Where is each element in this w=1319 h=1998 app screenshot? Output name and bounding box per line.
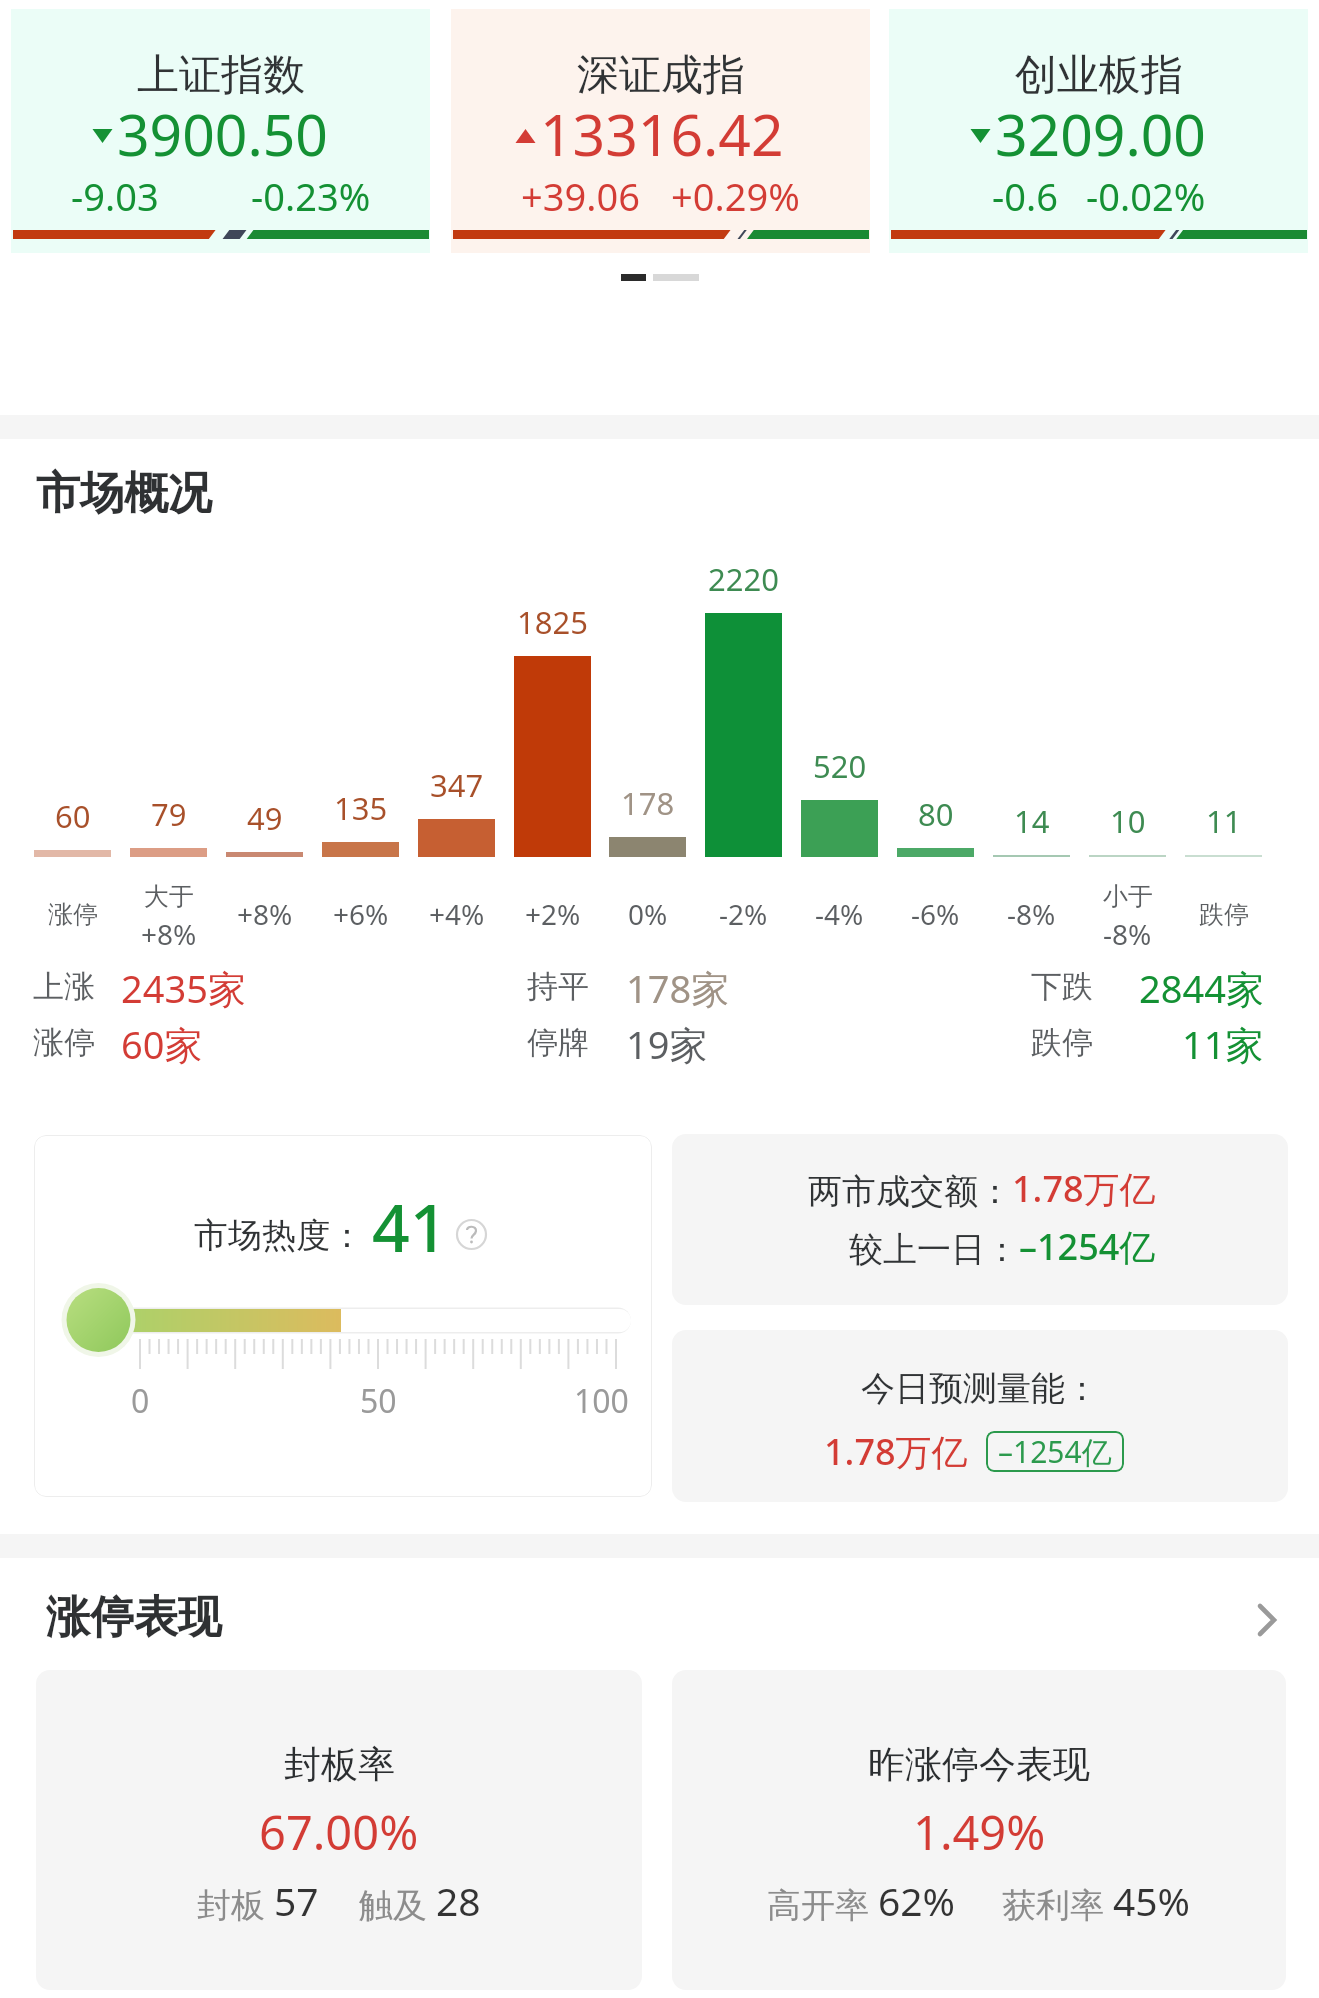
staticText: -8% bbox=[1103, 915, 1152, 953]
staticText: 市场热度： bbox=[194, 1214, 364, 1257]
staticText: 两市成交额： bbox=[808, 1170, 1012, 1213]
button[interactable]: 上证指数 bbox=[11, 9, 430, 253]
staticText: –1254亿 bbox=[1019, 1222, 1156, 1271]
staticText: 封板 bbox=[197, 1884, 265, 1927]
staticText: 持平 bbox=[527, 967, 589, 1006]
staticText: 3900.50 bbox=[117, 95, 328, 173]
staticText: -8% bbox=[1007, 895, 1056, 933]
staticText: 下跌 bbox=[1031, 967, 1093, 1006]
staticText: 2220 bbox=[708, 558, 779, 600]
staticText: 19家 bbox=[626, 1018, 708, 1070]
staticText: 67.00% bbox=[259, 1800, 419, 1864]
staticText: -0.23% bbox=[251, 170, 371, 222]
staticText: -0.02% bbox=[1086, 170, 1206, 222]
staticText: 1.78万亿 bbox=[1012, 1164, 1156, 1213]
staticText: 跌停 bbox=[1199, 899, 1249, 930]
staticText: 停牌 bbox=[527, 1023, 589, 1062]
staticText: 57 bbox=[274, 1874, 319, 1927]
staticText: +2% bbox=[525, 895, 581, 933]
button[interactable]: 封板率 bbox=[36, 1670, 642, 1990]
staticText: 100 bbox=[574, 1379, 629, 1423]
button[interactable]: 今日预测量能： bbox=[672, 1330, 1288, 1502]
staticText: 41 bbox=[372, 1181, 448, 1271]
staticText: 高开率 bbox=[767, 1884, 869, 1927]
staticText: 深证成指 bbox=[577, 49, 745, 102]
staticText: 触及 bbox=[359, 1884, 427, 1927]
staticText: 45% bbox=[1113, 1874, 1191, 1927]
staticText: -2% bbox=[719, 895, 768, 933]
staticText: +0.29% bbox=[671, 170, 800, 222]
staticText: 跌停 bbox=[1031, 1023, 1093, 1062]
staticText: 涨停 bbox=[33, 1023, 95, 1062]
staticText: 347 bbox=[430, 764, 484, 806]
staticText: 62% bbox=[878, 1874, 956, 1927]
staticText: –1254亿 bbox=[998, 1431, 1112, 1472]
staticText: 1.78万亿 bbox=[824, 1427, 968, 1476]
staticText: -6% bbox=[911, 895, 960, 933]
staticText: 60 bbox=[55, 795, 91, 837]
staticText: 50 bbox=[360, 1379, 397, 1423]
staticText: -4% bbox=[815, 895, 864, 933]
button[interactable]: 市场热度： bbox=[34, 1135, 652, 1497]
staticText: 0 bbox=[131, 1379, 150, 1423]
staticText: +8% bbox=[141, 915, 197, 953]
staticText: 79 bbox=[151, 793, 187, 835]
staticText: 11家 bbox=[1182, 1018, 1264, 1070]
staticText: 上证指数 bbox=[137, 49, 305, 102]
staticText: 178家 bbox=[626, 962, 730, 1014]
staticText: 市场概况 bbox=[36, 466, 212, 521]
button[interactable]: 两市成交额： bbox=[672, 1134, 1288, 1305]
staticText: 创业板指 bbox=[1015, 49, 1183, 102]
staticText: 10 bbox=[1110, 800, 1146, 842]
staticText: 60家 bbox=[121, 1018, 203, 1070]
staticText: 178 bbox=[621, 782, 675, 824]
staticText: +4% bbox=[429, 895, 485, 933]
staticText: 封板率 bbox=[284, 1741, 395, 1788]
staticText: 1.49% bbox=[913, 1800, 1046, 1864]
staticText: 11 bbox=[1206, 800, 1242, 842]
staticText: 49 bbox=[247, 797, 283, 839]
staticText: 2435家 bbox=[121, 962, 246, 1014]
staticText: 0% bbox=[628, 895, 668, 933]
button[interactable]: 创业板指 bbox=[889, 9, 1308, 253]
button[interactable]: 涨停表现 bbox=[46, 1590, 1289, 1645]
staticText: -0.6 bbox=[992, 170, 1058, 222]
button[interactable]: 深证成指 bbox=[451, 9, 870, 253]
staticText: 135 bbox=[334, 787, 388, 829]
staticText: +8% bbox=[237, 895, 293, 933]
staticText: 2844家 bbox=[1139, 962, 1264, 1014]
staticText: 涨停 bbox=[48, 899, 98, 930]
staticText: 涨停表现 bbox=[46, 1590, 222, 1645]
staticText: 大于 bbox=[144, 881, 194, 912]
staticText: +39.06 bbox=[521, 170, 640, 222]
staticText: 较上一日： bbox=[849, 1228, 1019, 1271]
staticText: -9.03 bbox=[71, 170, 159, 222]
staticText: 14 bbox=[1014, 800, 1050, 842]
staticText: 3209.00 bbox=[995, 95, 1206, 173]
button[interactable]: 昨涨停今表现 bbox=[672, 1670, 1286, 1990]
staticText: 上涨 bbox=[33, 967, 95, 1006]
staticText: 1825 bbox=[517, 601, 588, 643]
staticText: 昨涨停今表现 bbox=[868, 1741, 1090, 1788]
staticText: +6% bbox=[333, 895, 389, 933]
staticText: 13316.42 bbox=[540, 95, 784, 173]
staticText: 今日预测量能： bbox=[861, 1367, 1099, 1410]
staticText: 520 bbox=[813, 745, 867, 787]
staticText: 28 bbox=[436, 1874, 481, 1927]
other: 更多 bbox=[1243, 1594, 1289, 1642]
staticText: 小于 bbox=[1103, 881, 1153, 912]
staticText: 80 bbox=[918, 793, 954, 835]
staticText: 获利率 bbox=[1002, 1884, 1104, 1927]
